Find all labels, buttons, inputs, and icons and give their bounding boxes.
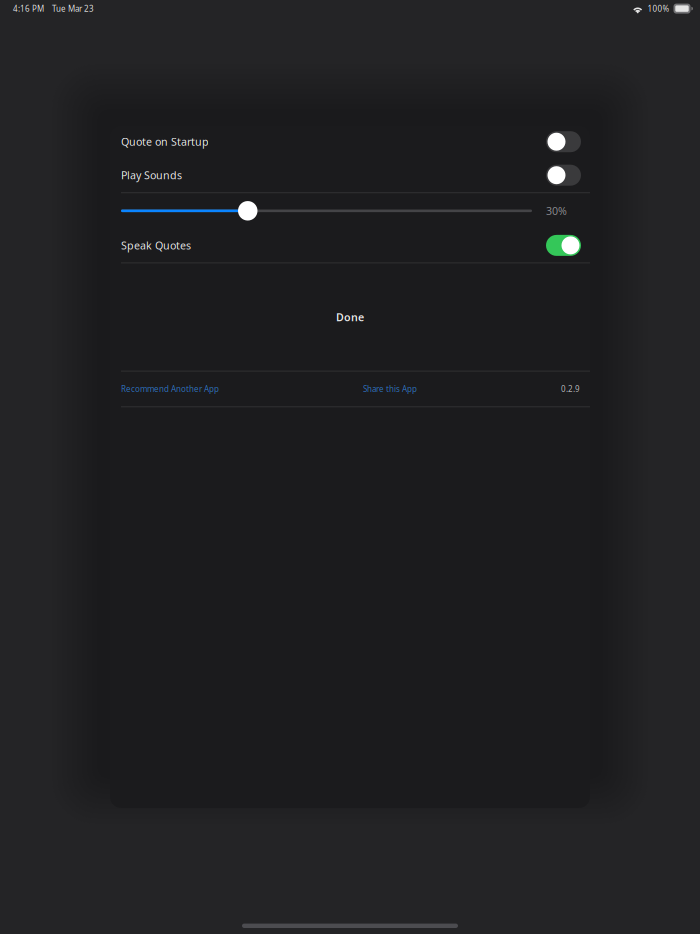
button[interactable]: Recommend Another App (121, 375, 287, 403)
button[interactable]: Quote on Startup (121, 125, 590, 158)
staticText: 100% (647, 3, 669, 14)
staticText: Play Sounds (121, 168, 182, 182)
staticText: Tue Mar 23 (52, 3, 94, 14)
staticText: Done (336, 310, 364, 324)
staticText: 0.2.9 (561, 384, 580, 394)
staticText: 4:16 PM (13, 3, 44, 14)
staticText: Share this App (363, 384, 417, 394)
staticText: Speak Quotes (121, 238, 191, 252)
button[interactable]: Play Sounds (121, 158, 590, 192)
button[interactable]: Done (121, 307, 579, 327)
staticText: 30% (546, 204, 567, 218)
staticText: Recommend Another App (121, 384, 219, 394)
button[interactable]: Share this App (287, 375, 493, 403)
button[interactable]: Speak Quotes (121, 228, 590, 262)
staticText: Quote on Startup (121, 135, 209, 149)
